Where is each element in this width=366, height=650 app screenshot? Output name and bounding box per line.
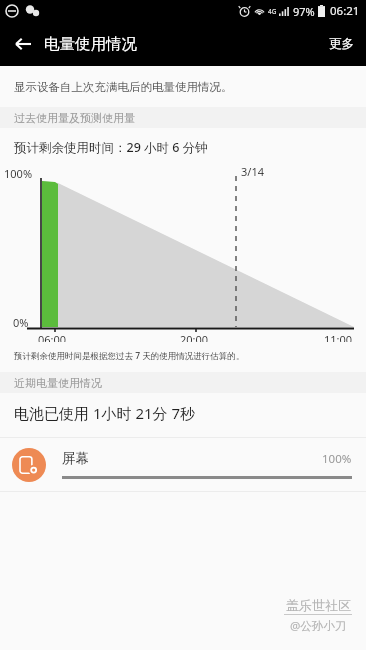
button[interactable]: Back [4, 25, 42, 63]
staticText: 近期电量使用情况 [14, 376, 102, 390]
staticText: 预计剩余使用时间：29 小时 6 分钟 [14, 139, 208, 156]
staticText: 电量使用情况 [44, 34, 137, 54]
staticText: 100% [4, 166, 33, 181]
staticText: 3/14 [241, 164, 264, 179]
staticText: 屏幕 [62, 450, 89, 467]
button[interactable]: 更多 [317, 26, 366, 62]
staticText: 预计剩余使用时间是根据您过去 7 天的使用情况进行估算的。 [14, 350, 245, 362]
staticText: 显示设备自上次充满电后的电量使用情况。 [14, 80, 233, 94]
staticText: 电池已使用 1小时 21分 7秒 [14, 403, 196, 423]
staticText: @公孙小刀 [290, 618, 347, 634]
staticText: 0% [13, 315, 29, 330]
staticText: 100% [322, 451, 352, 467]
staticText: 06:21 [330, 3, 360, 19]
staticText: 过去使用量及预测使用量 [14, 111, 135, 125]
staticText: 06:00 [38, 332, 67, 342]
staticText: 4G [268, 7, 277, 16]
staticText: 11:00 [324, 332, 353, 342]
staticText: 97% [293, 4, 315, 19]
staticText: 20:00 [180, 332, 209, 342]
staticText: 盖乐世社区 [286, 597, 351, 613]
button[interactable]: 屏幕 [0, 438, 366, 491]
staticText: 更多 [329, 36, 354, 52]
